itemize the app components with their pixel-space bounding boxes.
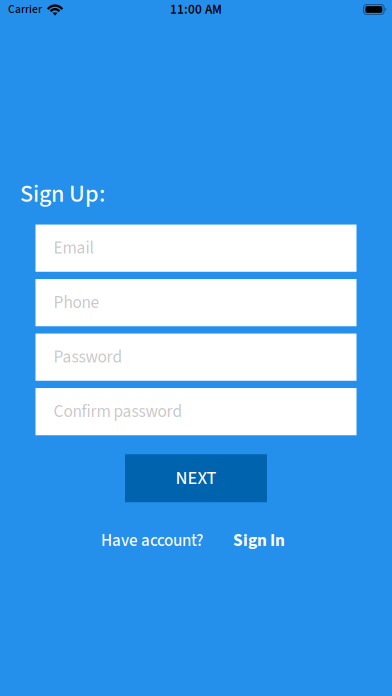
staticText: Sign Up: bbox=[20, 177, 105, 212]
button[interactable]: Confirm password bbox=[35, 388, 356, 435]
button[interactable]: Sign In bbox=[233, 528, 285, 553]
staticText: NEXT bbox=[175, 465, 216, 491]
button[interactable]: Phone bbox=[35, 279, 356, 326]
staticText: Password bbox=[53, 345, 122, 369]
staticText: Sign In bbox=[233, 528, 285, 553]
staticText: Have account? bbox=[101, 528, 203, 553]
staticText: Phone bbox=[53, 290, 99, 315]
staticText: 11:00 AM bbox=[170, 0, 222, 19]
button[interactable]: Email bbox=[35, 225, 356, 272]
button[interactable]: NEXT bbox=[125, 454, 267, 502]
button[interactable]: Password bbox=[35, 334, 356, 381]
staticText: Email bbox=[53, 236, 93, 260]
staticText: Carrier bbox=[8, 1, 42, 18]
staticText: Confirm password bbox=[53, 399, 182, 424]
